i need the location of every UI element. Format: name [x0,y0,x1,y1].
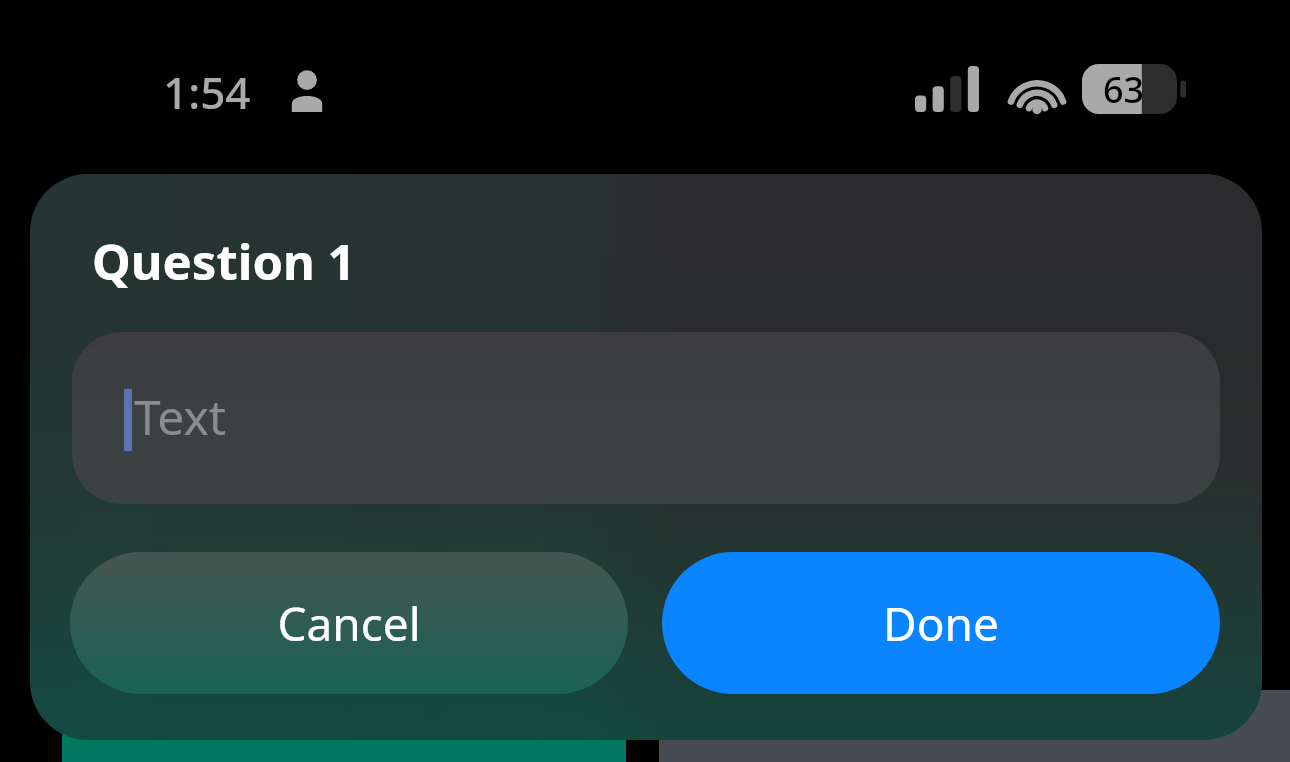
staticText: 1:54 [163,62,251,122]
staticText: Question 1 [92,228,356,295]
button[interactable]: Text input field [72,332,1220,504]
staticText: 63 [1103,65,1145,114]
staticText: Cancel [277,592,421,655]
staticText: Text [134,384,227,449]
staticText: Done [883,592,999,655]
button[interactable]: Done [662,552,1220,694]
button[interactable]: Cancel [70,552,628,694]
